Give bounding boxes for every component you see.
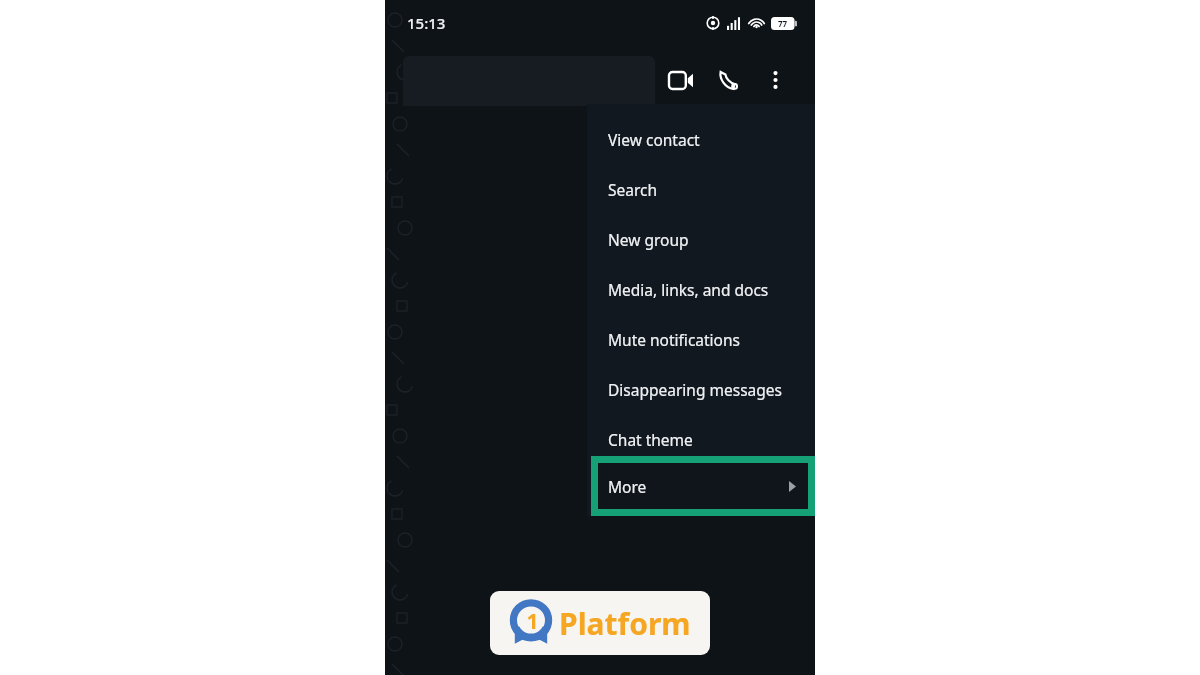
staticText: 1 [526, 607, 539, 636]
staticText: View contact [608, 129, 700, 150]
button[interactable]: Media, links, and docs [587, 264, 815, 314]
button[interactable]: New group [587, 214, 815, 264]
button[interactable]: More [598, 463, 808, 509]
button[interactable]: View contact [587, 114, 815, 164]
staticText: Mute notifications [608, 329, 740, 350]
button[interactable]: Chat theme [587, 414, 815, 464]
staticText: 77 [778, 18, 788, 29]
button[interactable]: Voice call [705, 56, 753, 104]
staticText: More [608, 476, 647, 497]
button[interactable]: Video call [657, 56, 705, 104]
staticText: New group [608, 229, 689, 250]
staticText: Media, links, and docs [608, 279, 769, 300]
button[interactable]: More options [753, 58, 797, 102]
staticText: Search [608, 179, 658, 200]
staticText: Disappearing messages [608, 379, 782, 400]
staticText: Platform [559, 603, 691, 644]
staticText: 15:13 [407, 13, 446, 33]
button[interactable]: Search [587, 164, 815, 214]
button[interactable]: Mute notifications [587, 314, 815, 364]
button[interactable]: 1 [490, 591, 710, 655]
button[interactable]: Disappearing messages [587, 364, 815, 414]
staticText: Chat theme [608, 429, 693, 450]
